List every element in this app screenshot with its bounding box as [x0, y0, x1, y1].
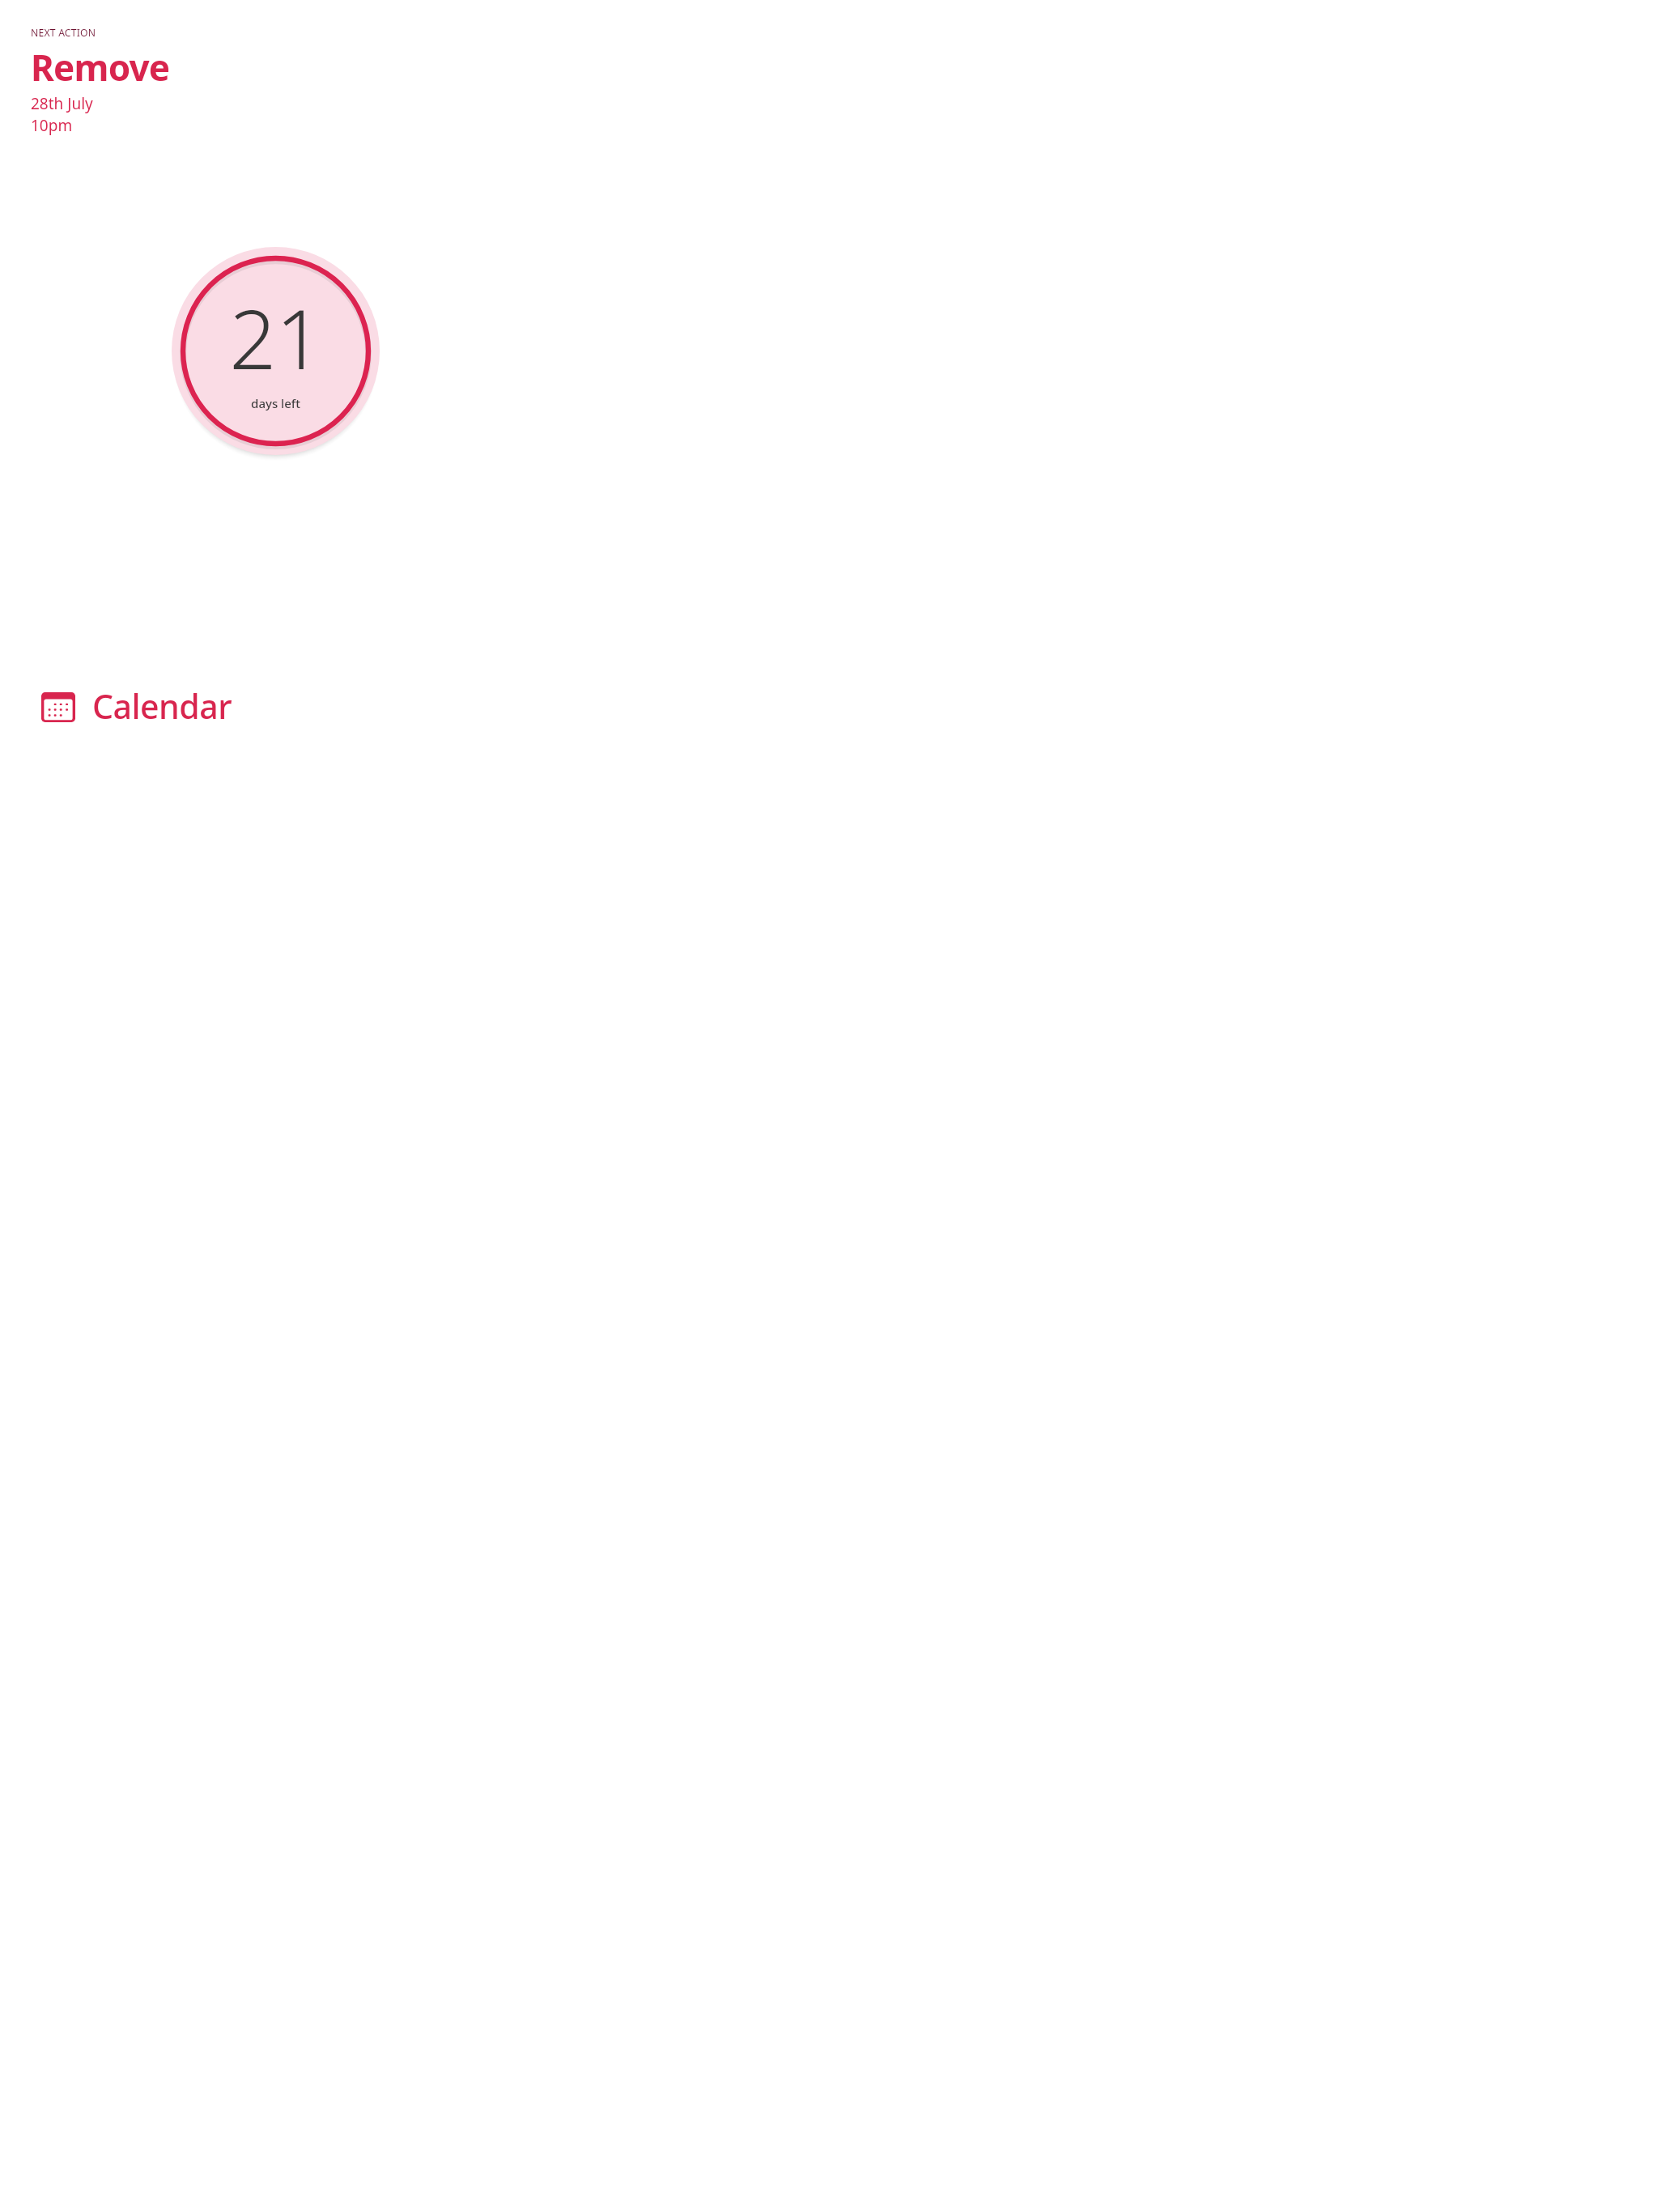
staticText: Remove — [31, 43, 170, 91]
button[interactable]: 21 days left — [172, 247, 380, 455]
staticText: 10pm — [31, 115, 73, 136]
button[interactable]: Calendar — [41, 684, 232, 730]
staticText: NEXT ACTION — [31, 26, 96, 40]
staticText: days left — [251, 395, 300, 411]
staticText: 21 — [229, 281, 322, 393]
staticText: Calendar — [92, 683, 232, 729]
staticText: 28th July — [31, 93, 93, 114]
